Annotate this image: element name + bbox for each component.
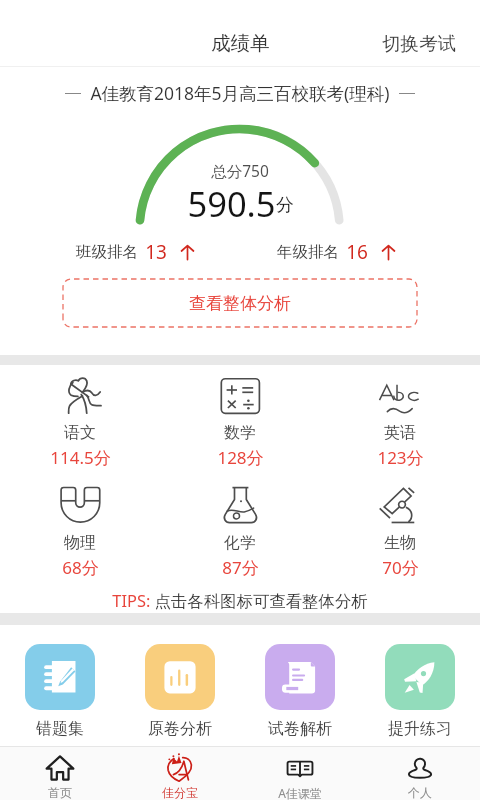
button[interactable]: 英语 xyxy=(320,375,480,469)
staticText: 数学 xyxy=(224,423,256,443)
button[interactable]: 数学 xyxy=(160,375,320,469)
staticText: 16 xyxy=(346,239,368,265)
staticText: TIPS: 点击各科图标可查看整体分析 xyxy=(112,589,368,611)
button[interactable]: 试卷解析 xyxy=(240,644,360,739)
button[interactable]: A佳课堂 xyxy=(240,746,360,800)
staticText: 590.5 xyxy=(187,180,276,226)
staticText: A佳课堂 xyxy=(278,785,322,800)
button[interactable]: 提升练习 xyxy=(360,644,480,739)
staticText: 错题集 xyxy=(36,719,84,739)
button[interactable]: 错题集 xyxy=(0,644,120,739)
staticText: 班级排名 xyxy=(76,242,138,262)
button[interactable]: 物理 xyxy=(0,485,160,579)
staticText: 查看整体分析 xyxy=(189,293,291,314)
button[interactable]: 生物 xyxy=(320,485,480,579)
staticText: A佳教育2018年5月高三百校联考(理科) xyxy=(90,81,390,105)
button[interactable]: 班级排名 xyxy=(76,239,194,265)
staticText: 114.5分 xyxy=(50,446,111,469)
staticText: 成绩单 xyxy=(211,31,270,56)
button[interactable]: 佳分宝 xyxy=(120,746,240,800)
staticText: 87分 xyxy=(222,556,259,579)
staticText: 68分 xyxy=(62,556,99,579)
staticText: 128分 xyxy=(217,446,264,469)
button[interactable]: 语文 xyxy=(0,375,160,469)
button[interactable]: 切换考试 xyxy=(366,24,480,63)
button[interactable]: 首页 xyxy=(0,746,120,800)
staticText: 70分 xyxy=(382,556,419,579)
button[interactable]: 年级排名 xyxy=(277,239,395,265)
staticText: 首页 xyxy=(48,785,72,800)
staticText: 个人 xyxy=(408,785,432,800)
staticText: 总分750 xyxy=(211,160,269,181)
button[interactable]: 成绩单 xyxy=(195,23,286,64)
staticText: 生物 xyxy=(384,533,416,553)
staticText: 化学 xyxy=(224,533,256,553)
staticText: 年级排名 xyxy=(277,242,339,262)
staticText: 分 xyxy=(276,194,294,217)
staticText: 试卷解析 xyxy=(268,719,332,739)
button[interactable]: 化学 xyxy=(160,485,320,579)
staticText: 英语 xyxy=(384,423,416,443)
button[interactable]: 原卷分析 xyxy=(120,644,240,739)
staticText: 佳分宝 xyxy=(162,785,198,800)
button[interactable]: 查看整体分析 xyxy=(63,279,417,327)
staticText: 语文 xyxy=(64,423,96,443)
staticText: 原卷分析 xyxy=(148,719,212,739)
staticText: 物理 xyxy=(64,533,96,553)
staticText: 13 xyxy=(145,239,167,265)
staticText: 切换考试 xyxy=(382,32,456,55)
staticText: 提升练习 xyxy=(388,719,452,739)
staticText: 123分 xyxy=(377,446,424,469)
button[interactable]: 个人 xyxy=(360,746,480,800)
